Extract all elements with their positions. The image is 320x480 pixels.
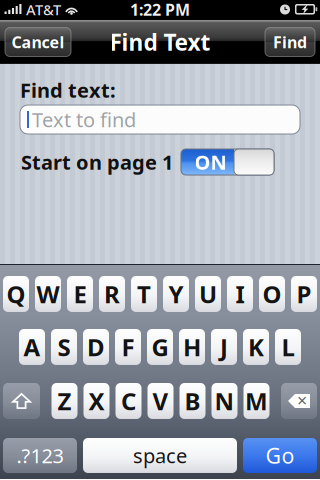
staticText: T [137, 278, 151, 310]
staticText: J [220, 331, 228, 363]
staticText: A [23, 331, 40, 363]
staticText: Find Text [109, 27, 210, 57]
staticText: Start on page 1 [21, 149, 173, 175]
staticText: B [184, 385, 200, 417]
staticText: X [88, 385, 104, 417]
staticText: Cancel [11, 31, 64, 53]
button[interactable]: Q [3, 276, 29, 312]
staticText: R [104, 278, 120, 310]
button[interactable]: Y [163, 276, 189, 312]
staticText: K [248, 331, 264, 363]
staticText: ON [194, 149, 226, 175]
button[interactable]: J [211, 329, 237, 365]
staticText: E [73, 278, 86, 310]
button[interactable]: O [259, 276, 285, 312]
button[interactable]: N [211, 383, 237, 419]
button[interactable]: C [115, 383, 141, 419]
button[interactable]: Go [243, 438, 317, 473]
button[interactable]: B [179, 383, 205, 419]
staticText: AT&T [26, 0, 61, 19]
button[interactable]: R [99, 276, 125, 312]
button[interactable]: L [275, 329, 301, 365]
button[interactable]: X [83, 383, 109, 419]
button[interactable]: I [227, 276, 253, 312]
button[interactable]: M [243, 383, 269, 419]
staticText: U [199, 278, 217, 310]
button[interactable]: G [147, 329, 173, 365]
staticText: Go [265, 441, 294, 470]
staticText: .?123 [16, 442, 63, 469]
button[interactable]: V [147, 383, 173, 419]
button[interactable]: Z [51, 383, 77, 419]
button[interactable]: P [291, 276, 317, 312]
button[interactable]: H [179, 329, 205, 365]
button[interactable]: U [195, 276, 221, 312]
button[interactable]: .?123 [3, 438, 77, 473]
staticText: N [214, 385, 234, 417]
staticText: ✕ [296, 393, 307, 408]
staticText: Text to find [32, 106, 136, 133]
staticText: C [121, 385, 136, 417]
button[interactable]: T [131, 276, 157, 312]
button[interactable]: space [83, 438, 237, 473]
button[interactable]: D [83, 329, 109, 365]
button[interactable]: F [115, 329, 141, 365]
staticText: V [152, 385, 168, 417]
staticText: S [57, 331, 70, 363]
staticText: P [296, 278, 311, 310]
button[interactable]: K [243, 329, 269, 365]
button[interactable]: Delete [281, 383, 317, 419]
staticText: Z [57, 385, 71, 417]
button[interactable]: Find [265, 27, 315, 56]
staticText: Find text: [20, 77, 116, 103]
staticText: 1:22 PM [130, 0, 190, 20]
button[interactable]: E [67, 276, 93, 312]
staticText: M [245, 385, 268, 417]
staticText: O [262, 278, 281, 310]
staticText: I [235, 278, 244, 310]
button[interactable]: Cancel [5, 27, 71, 56]
staticText: W [36, 278, 59, 310]
staticText: Y [168, 278, 183, 310]
button[interactable]: ON [181, 149, 274, 175]
button[interactable]: A [19, 329, 45, 365]
staticText: space [133, 442, 187, 469]
staticText: H [183, 331, 201, 363]
staticText: L [281, 331, 294, 363]
staticText: F [121, 331, 134, 363]
staticText: Q [6, 278, 25, 310]
button[interactable]: S [51, 329, 77, 365]
staticText: G [151, 331, 168, 363]
staticText: Find [273, 31, 307, 53]
button[interactable]: W [35, 276, 61, 312]
button[interactable]: Shift [3, 383, 40, 419]
staticText: D [87, 331, 105, 363]
